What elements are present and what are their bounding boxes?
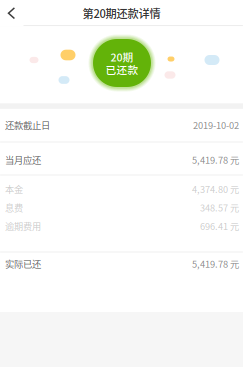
- staticText: 第20期还款详情: [82, 5, 160, 21]
- staticText: 4,374.80 元: [192, 182, 239, 196]
- staticText: 当月应还: [5, 153, 41, 166]
- staticText: 实际已还: [5, 257, 41, 270]
- staticText: 348.57 元: [200, 201, 239, 214]
- staticText: 息费: [5, 201, 23, 214]
- button[interactable]: Back: [0, 0, 23, 26]
- staticText: 已还款: [105, 62, 138, 77]
- staticText: 还款截止日: [5, 118, 50, 132]
- staticText: 5,419.78 元: [192, 257, 239, 270]
- staticText: 2019-10-02: [193, 118, 239, 132]
- staticText: 本金: [5, 182, 23, 196]
- staticText: 696.41 元: [200, 219, 239, 233]
- staticText: 逾期费用: [5, 219, 41, 233]
- staticText: 20期: [110, 49, 133, 64]
- staticText: 5,419.78 元: [192, 153, 239, 166]
